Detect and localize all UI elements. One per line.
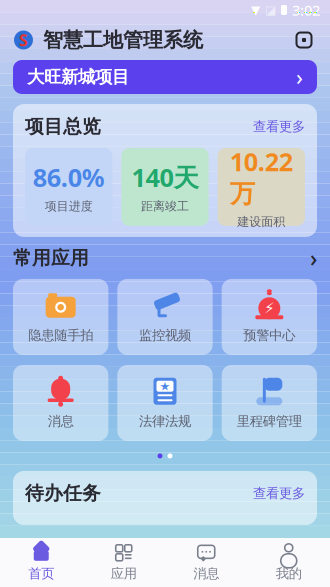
button[interactable]: 应用 bbox=[82, 538, 165, 586]
staticText: › bbox=[310, 243, 317, 273]
staticText: 10.22万 bbox=[230, 145, 293, 209]
staticText: 隐患随手拍 bbox=[28, 327, 93, 344]
staticText: 常用应用 bbox=[13, 246, 89, 269]
staticText: 监控视频 bbox=[139, 327, 191, 344]
button[interactable]: 大旺新城项目 bbox=[13, 60, 317, 94]
staticText: ★ bbox=[159, 379, 170, 393]
staticText: ⚡︎ bbox=[264, 300, 274, 316]
button[interactable]: 首页 bbox=[0, 538, 82, 586]
staticText: 首页 bbox=[28, 565, 54, 582]
staticText: 查看更多 bbox=[253, 118, 305, 135]
button[interactable]: 查看更多 bbox=[253, 118, 305, 135]
button[interactable]: 隐患随手拍 bbox=[13, 279, 108, 355]
staticText: 86.0% bbox=[33, 160, 105, 194]
staticText: S bbox=[19, 29, 28, 51]
staticText: 预警中心 bbox=[243, 327, 295, 344]
button[interactable]: 监控视频 bbox=[117, 279, 213, 355]
staticText: 3:02 bbox=[292, 0, 320, 20]
staticText: 待办任务 bbox=[25, 482, 101, 505]
staticText: 大旺新城项目 bbox=[27, 66, 129, 88]
staticText: 我的 bbox=[276, 565, 302, 582]
staticText: 里程碑管理 bbox=[237, 413, 302, 430]
button[interactable]: 扫一扫 bbox=[291, 27, 317, 53]
button[interactable]: 消息 bbox=[13, 365, 108, 441]
staticText: 查看更多 bbox=[253, 485, 305, 502]
staticText: 项目总览 bbox=[25, 115, 101, 138]
staticText: 应用 bbox=[111, 565, 137, 582]
staticText: 法律法规 bbox=[139, 413, 191, 430]
button[interactable]: 常用应用 bbox=[13, 247, 317, 269]
button[interactable]: 消息 bbox=[165, 538, 247, 586]
staticText: 消息 bbox=[48, 413, 74, 430]
button[interactable]: ★ bbox=[117, 365, 213, 441]
staticText: 消息 bbox=[193, 565, 219, 582]
staticText: › bbox=[296, 63, 303, 91]
staticText: 140天 bbox=[131, 160, 198, 194]
staticText: 项目进度 bbox=[45, 199, 93, 214]
button[interactable]: 查看更多 bbox=[253, 485, 305, 502]
button[interactable]: 里程碑管理 bbox=[222, 365, 317, 441]
button[interactable]: 我的 bbox=[247, 538, 330, 586]
staticText: ◪ bbox=[265, 3, 276, 17]
button[interactable]: ⚡︎ bbox=[222, 279, 317, 355]
staticText: ▼ bbox=[251, 3, 260, 17]
staticText: 建设面积 bbox=[237, 214, 285, 229]
staticText: 距离竣工 bbox=[141, 199, 189, 214]
staticText: 智慧工地管理系统 bbox=[43, 28, 203, 52]
